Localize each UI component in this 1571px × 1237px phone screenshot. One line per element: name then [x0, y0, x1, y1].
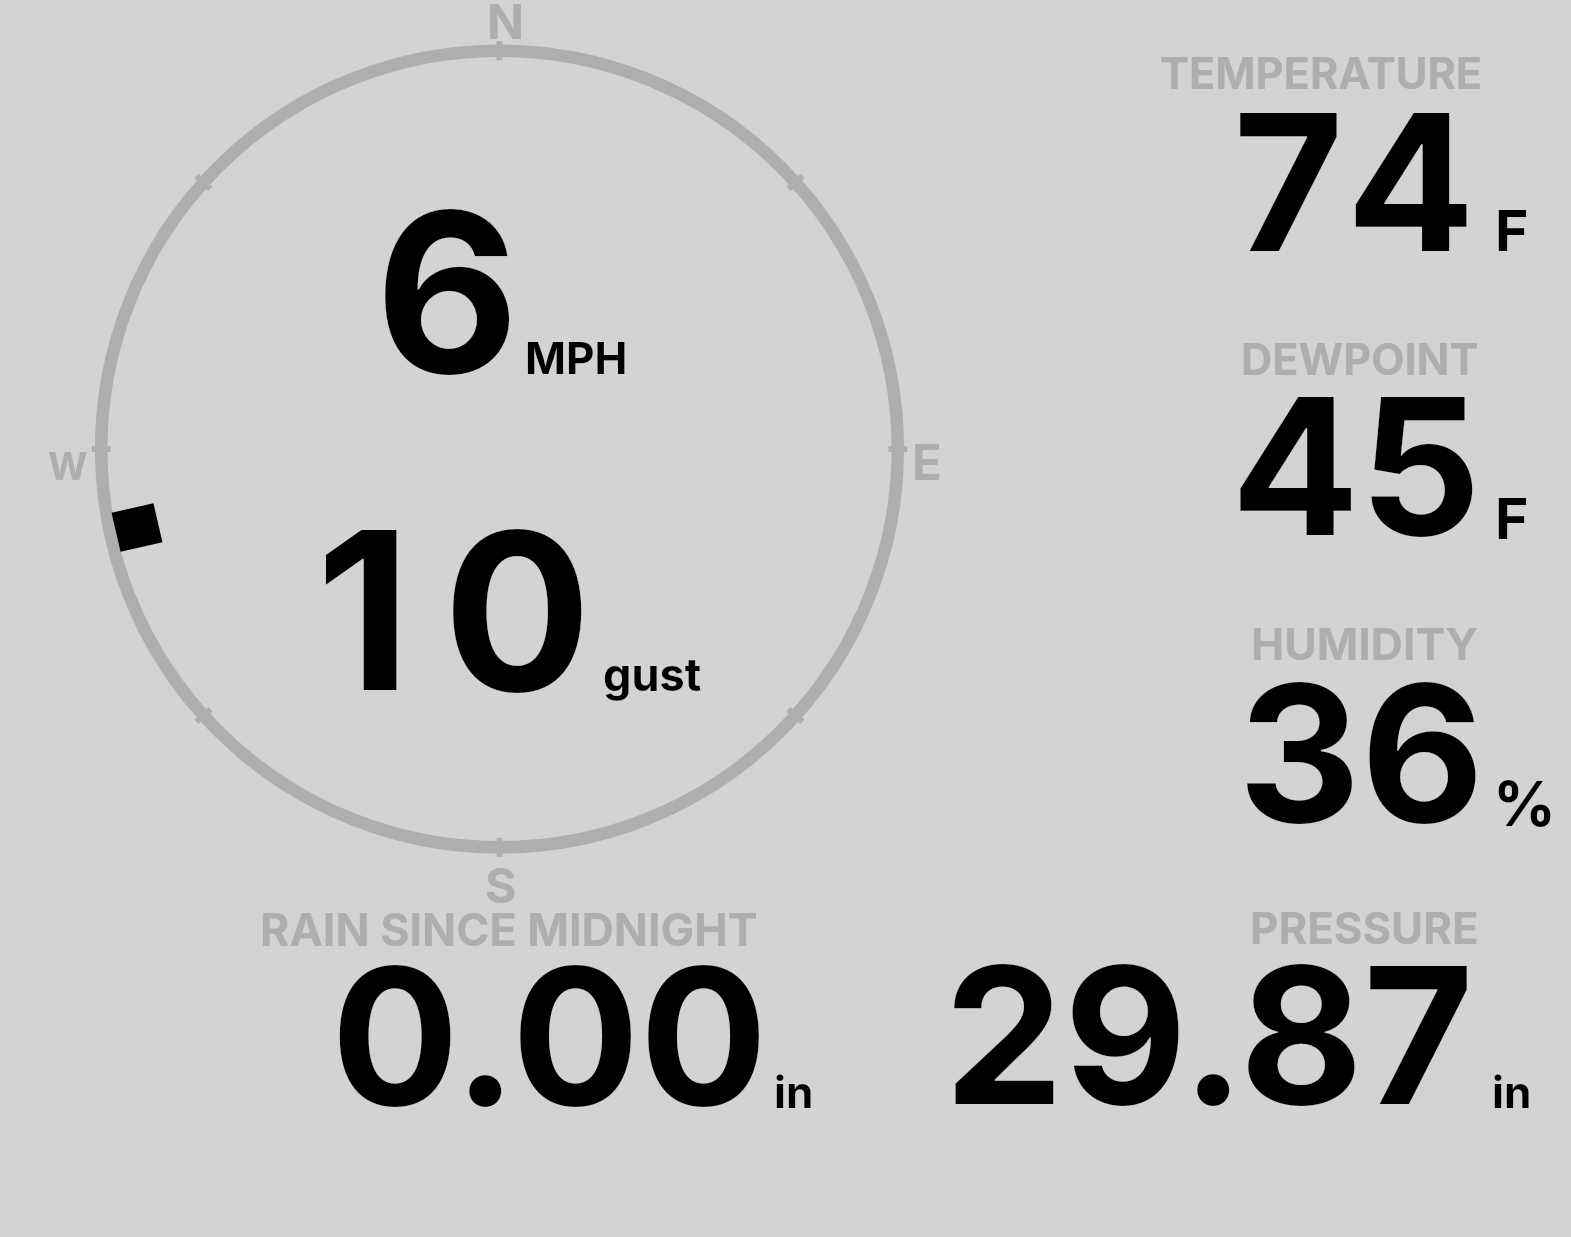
staticText: 6 [375, 158, 520, 427]
staticText: 1 [316, 477, 411, 743]
staticText: DEWPOINT [1241, 333, 1479, 385]
staticText: PRESSURE [1250, 902, 1479, 955]
staticText: HUMIDITY [1251, 617, 1479, 671]
button[interactable]: Humidity 36 percent [1040, 600, 1570, 840]
staticText: 45 [1231, 351, 1481, 581]
staticText: in [1492, 1065, 1532, 1118]
staticText: TEMPERATURE [1160, 47, 1483, 99]
button[interactable]: Rain since midnight 0.00 inches [250, 890, 830, 1120]
staticText: F [1495, 484, 1529, 553]
staticText: 29.87 [944, 920, 1474, 1150]
staticText: 36 [1238, 638, 1485, 868]
staticText: 0 [443, 478, 592, 744]
staticText: 0.00 [331, 921, 768, 1151]
staticText: S [485, 856, 517, 914]
button[interactable]: Pressure 29.87 inches of mercury [930, 890, 1550, 1120]
button[interactable]: Temperature 74 degrees Fahrenheit [1040, 30, 1570, 270]
staticText: gust [603, 647, 702, 701]
staticText: F [1495, 196, 1529, 265]
staticText: in [774, 1065, 814, 1118]
button[interactable]: Wind 6 miles per hour, gusting to 10, fr… [60, 0, 960, 905]
staticText: N [487, 0, 524, 51]
staticText: E [912, 433, 942, 492]
staticText: 74 [1227, 67, 1473, 297]
staticText: MPH [525, 331, 628, 384]
staticText: RAIN SINCE MIDNIGHT [260, 903, 758, 957]
staticText: W [48, 443, 88, 489]
staticText: % [1493, 766, 1556, 841]
button[interactable]: Dewpoint 45 degrees Fahrenheit [1040, 315, 1570, 555]
